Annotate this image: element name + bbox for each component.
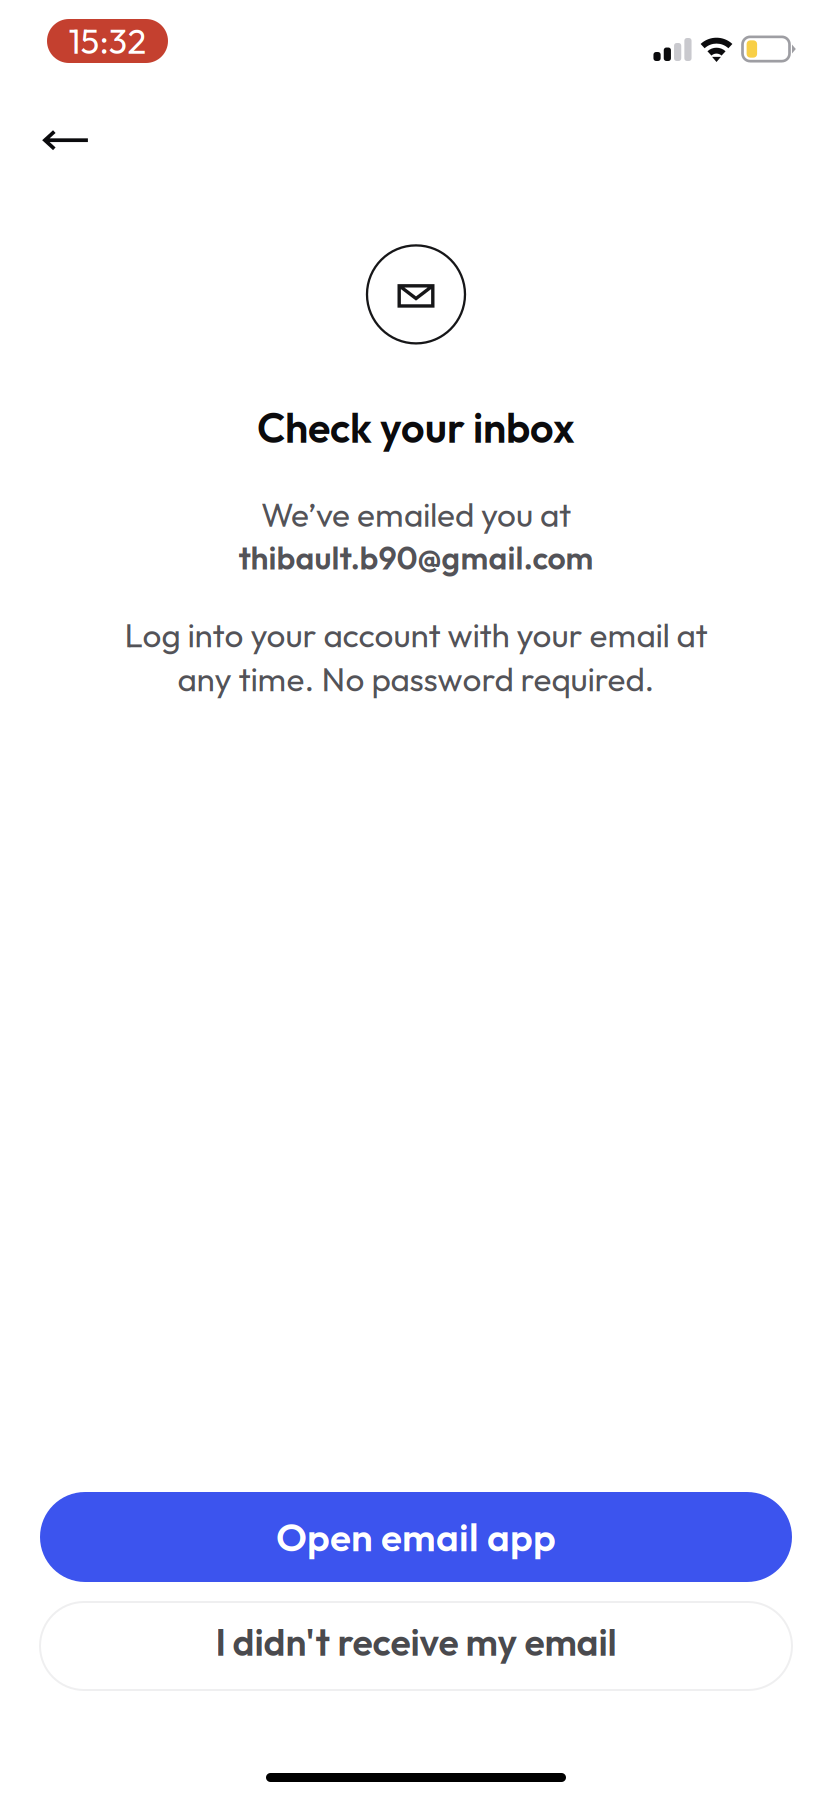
button[interactable]: Open email app — [40, 1492, 792, 1582]
button[interactable]: Back — [0, 82, 116, 159]
staticText: Check your inbox — [257, 401, 575, 453]
staticText: We’ve emailed you at — [261, 493, 571, 535]
button[interactable]: I didn't receive my email — [40, 1602, 792, 1690]
staticText: Open email app — [276, 1513, 556, 1561]
staticText: Log into your account with your email at — [124, 614, 707, 656]
staticText: 15:32 — [68, 19, 146, 63]
staticText: thibault.b90@gmail.com — [238, 537, 593, 578]
staticText: I didn't receive my email — [215, 1618, 616, 1665]
staticText: any time. No password required. — [177, 658, 654, 700]
